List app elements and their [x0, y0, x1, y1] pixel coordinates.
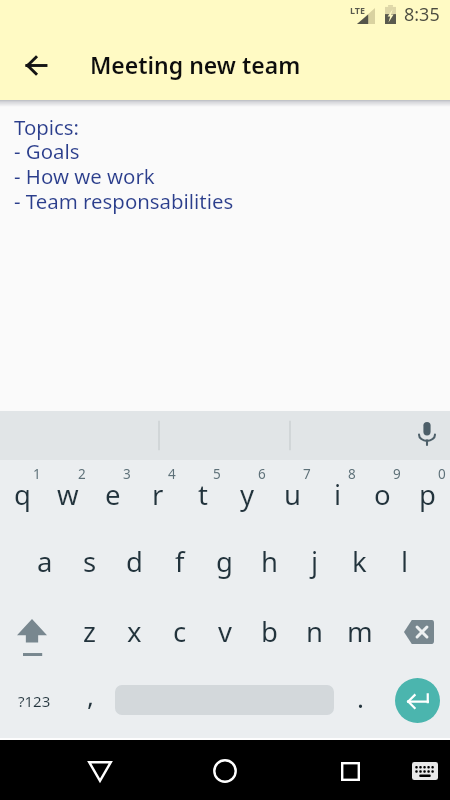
button[interactable]: Backspace: [382, 595, 450, 663]
button[interactable]: Voice input: [405, 411, 449, 455]
button[interactable]: l: [382, 527, 427, 595]
staticText: u: [284, 476, 301, 513]
staticText: c: [173, 613, 187, 650]
staticText: 6: [258, 465, 266, 483]
staticText: 9: [393, 465, 401, 483]
staticText: w: [57, 476, 79, 513]
staticText: r: [152, 476, 164, 513]
button[interactable]: n: [292, 595, 337, 663]
staticText: 3: [123, 465, 131, 483]
button[interactable]: g: [202, 527, 247, 595]
staticText: b: [261, 613, 278, 650]
button[interactable]: 8: [315, 460, 360, 527]
staticText: 2: [78, 465, 86, 483]
button[interactable]: 9: [360, 460, 405, 527]
staticText: 8:35: [404, 2, 440, 27]
staticText: 8: [348, 465, 356, 483]
button[interactable]: 7: [270, 460, 315, 527]
staticText: 7: [303, 465, 311, 483]
staticText: ?123: [18, 691, 51, 711]
button[interactable]: 6: [225, 460, 270, 527]
staticText: LTE: [350, 4, 366, 16]
button[interactable]: Space: [113, 669, 336, 729]
staticText: n: [306, 613, 323, 650]
button[interactable]: x: [112, 595, 157, 663]
staticText: s: [83, 543, 97, 580]
staticText: m: [347, 613, 373, 650]
button[interactable]: 4: [135, 460, 180, 527]
button[interactable]: 3: [90, 460, 135, 527]
button[interactable]: 1: [0, 460, 45, 527]
button[interactable]: Shift: [0, 595, 67, 663]
button[interactable]: j: [292, 527, 337, 595]
staticText: f: [175, 543, 185, 580]
staticText: a: [37, 543, 53, 580]
button[interactable]: .: [338, 675, 383, 731]
button[interactable]: Back: [76, 747, 124, 795]
button[interactable]: b: [247, 595, 292, 663]
staticText: 1: [33, 465, 41, 483]
button[interactable]: k: [337, 527, 382, 595]
staticText: i: [334, 476, 342, 513]
staticText: q: [14, 476, 31, 513]
button[interactable]: f: [157, 527, 202, 595]
staticText: ,: [87, 678, 94, 713]
button[interactable]: ,: [68, 673, 113, 729]
button[interactable]: z: [67, 595, 112, 663]
button[interactable]: m: [337, 595, 382, 663]
button[interactable]: Enter: [383, 670, 450, 730]
button[interactable]: 5: [180, 460, 225, 527]
button[interactable]: h: [247, 527, 292, 595]
button[interactable]: Switch keyboard: [403, 749, 447, 793]
staticText: t: [198, 476, 208, 513]
button[interactable]: ?123: [0, 673, 68, 729]
staticText: d: [126, 543, 143, 580]
staticText: j: [311, 543, 319, 580]
staticText: p: [419, 476, 436, 513]
staticText: 5: [213, 465, 221, 483]
button[interactable]: Home: [201, 747, 249, 795]
staticText: h: [261, 543, 278, 580]
staticText: l: [401, 543, 409, 580]
staticText: g: [216, 543, 233, 580]
staticText: Topics: - Goals - How we work - Team res…: [14, 113, 234, 215]
staticText: e: [105, 476, 121, 513]
button[interactable]: a: [22, 527, 67, 595]
staticText: x: [127, 613, 142, 650]
button[interactable]: s: [67, 527, 112, 595]
button[interactable]: Recents: [326, 747, 374, 795]
staticText: z: [83, 613, 96, 650]
button[interactable]: c: [157, 595, 202, 663]
button[interactable]: Back: [13, 43, 58, 88]
staticText: 0: [438, 465, 446, 483]
staticText: .: [357, 680, 364, 715]
button[interactable]: v: [202, 595, 247, 663]
button[interactable]: 0: [405, 460, 450, 527]
staticText: Meeting new team: [90, 49, 301, 80]
staticText: k: [352, 543, 367, 580]
staticText: v: [218, 613, 232, 650]
staticText: o: [374, 476, 391, 513]
button[interactable]: d: [112, 527, 157, 595]
button[interactable]: 2: [45, 460, 90, 527]
staticText: 4: [168, 465, 176, 483]
staticText: y: [240, 476, 255, 513]
